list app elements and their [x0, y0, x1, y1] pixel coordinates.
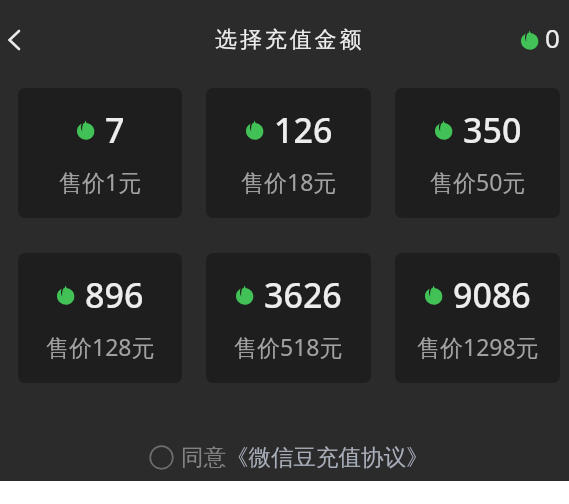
- button[interactable]: 0: [520, 23, 569, 58]
- staticText: 售价1元: [59, 166, 142, 197]
- staticText: 896: [85, 272, 144, 318]
- button[interactable]: 9086: [395, 253, 560, 383]
- staticText: 售价518元: [234, 331, 343, 362]
- button[interactable]: 896: [18, 253, 182, 383]
- staticText: 350: [463, 107, 522, 153]
- staticText: 售价50元: [430, 166, 526, 197]
- button[interactable]: 350: [395, 88, 560, 218]
- staticText: 选择充值金额: [215, 26, 365, 54]
- staticText: 同意《微信豆充值协议》: [181, 443, 429, 471]
- staticText: 售价1298元: [417, 331, 539, 362]
- staticText: 126: [274, 107, 333, 153]
- staticText: 0: [545, 20, 560, 55]
- button[interactable]: 同意《微信豆充值协议》: [149, 443, 429, 471]
- button[interactable]: Back: [0, 20, 34, 60]
- staticText: 售价128元: [46, 331, 155, 362]
- staticText: 3626: [264, 272, 342, 318]
- staticText: 7: [105, 107, 125, 153]
- button[interactable]: 126: [206, 88, 371, 218]
- button[interactable]: 7: [18, 88, 182, 218]
- staticText: 9086: [453, 272, 531, 318]
- button[interactable]: 3626: [206, 253, 371, 383]
- staticText: 售价18元: [241, 166, 337, 197]
